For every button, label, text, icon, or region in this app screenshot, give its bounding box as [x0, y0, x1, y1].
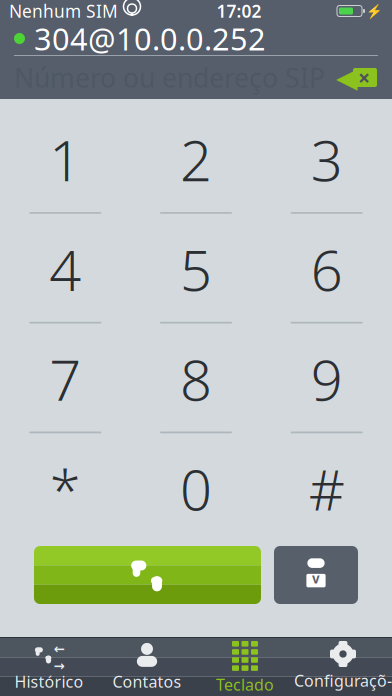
- staticText: 8: [180, 342, 212, 416]
- button[interactable]: 3: [261, 107, 392, 217]
- staticText: ←: [53, 641, 64, 656]
- button[interactable]: 9: [261, 326, 392, 436]
- button[interactable]: Contatos: [98, 638, 196, 696]
- button[interactable]: ←: [0, 638, 98, 696]
- staticText: ×: [358, 63, 370, 92]
- button[interactable]: 6: [261, 217, 392, 327]
- button[interactable]: 4: [0, 217, 131, 327]
- staticText: Histórico: [14, 671, 83, 692]
- button[interactable]: 2: [131, 107, 261, 217]
- button[interactable]: 0: [131, 436, 261, 546]
- staticText: #: [309, 452, 345, 526]
- staticText: 2: [180, 122, 212, 197]
- button[interactable]: Configurações: [294, 638, 392, 696]
- staticText: 304@10.0.0.252: [34, 18, 266, 59]
- staticText: 5: [180, 232, 212, 306]
- staticText: Teclado: [216, 674, 274, 695]
- staticText: ⚡: [366, 3, 383, 19]
- button[interactable]: 7: [0, 326, 131, 436]
- staticText: 17:02: [216, 0, 261, 22]
- button[interactable]: *: [0, 436, 131, 546]
- staticText: Contatos: [112, 671, 181, 692]
- staticText: 1: [49, 122, 81, 197]
- staticText: 4: [49, 232, 81, 306]
- staticText: v: [312, 569, 320, 587]
- button[interactable]: 5: [131, 217, 261, 327]
- staticText: 3: [311, 122, 343, 197]
- staticText: 7: [49, 342, 81, 416]
- staticText: *: [50, 452, 81, 526]
- button[interactable]: Ligar: [34, 546, 261, 604]
- staticText: 9: [311, 342, 343, 416]
- staticText: Configurações: [294, 670, 392, 696]
- button[interactable]: 8: [131, 326, 261, 436]
- button[interactable]: Teclado: [196, 638, 294, 696]
- staticText: 0: [180, 452, 212, 526]
- staticText: Nenhum SIM: [9, 0, 118, 22]
- staticText: 6: [311, 232, 343, 306]
- button[interactable]: Contatos: [274, 546, 358, 604]
- staticText: ◀: [336, 62, 358, 93]
- staticText: →: [53, 658, 64, 673]
- button[interactable]: #: [261, 436, 392, 546]
- button[interactable]: 1: [0, 107, 131, 217]
- button[interactable]: Apagar: [340, 66, 378, 88]
